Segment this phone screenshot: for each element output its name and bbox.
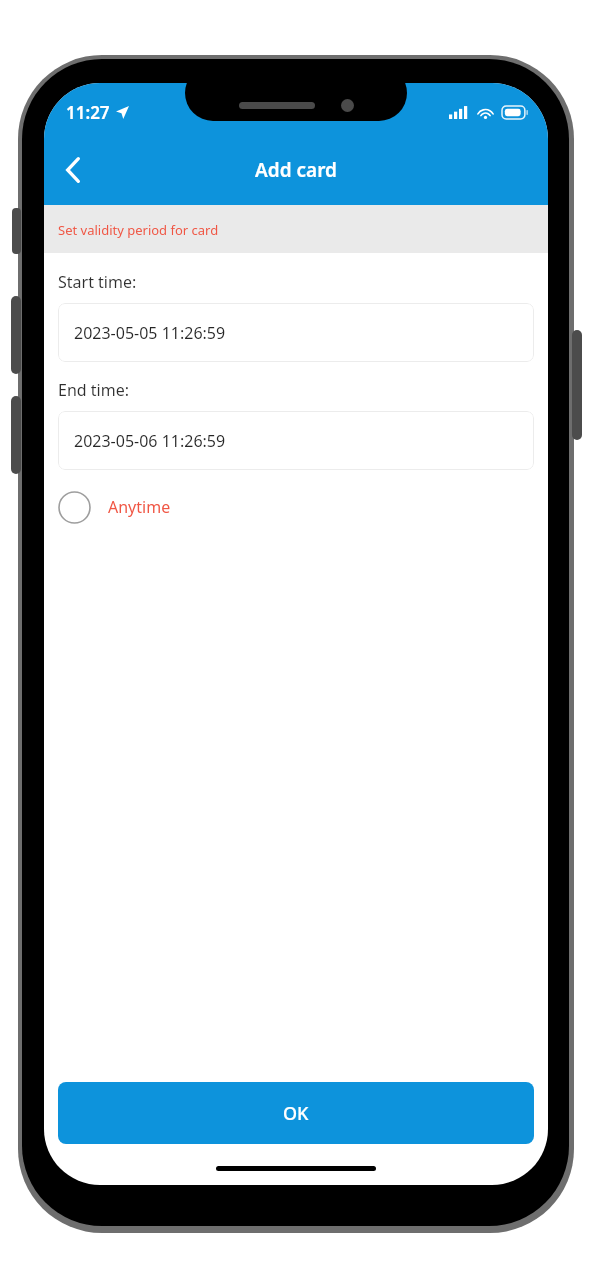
staticText: 11:27 [66, 101, 110, 124]
button[interactable]: Anytime [58, 484, 171, 530]
staticText: Anytime [108, 496, 171, 518]
staticText: Start time: [58, 271, 137, 293]
staticText: 2023-05-06 11:26:59 [74, 430, 226, 452]
button[interactable]: 2023-05-05 11:26:59 [58, 303, 534, 362]
staticText: End time: [58, 379, 129, 401]
button[interactable]: 2023-05-06 11:26:59 [58, 411, 534, 470]
staticText: OK [283, 1101, 309, 1126]
button[interactable]: Back [44, 142, 100, 198]
staticText: Set validity period for card [58, 221, 219, 239]
button[interactable]: OK [58, 1082, 534, 1144]
staticText: 2023-05-05 11:26:59 [74, 322, 226, 344]
staticText: Add card [255, 157, 337, 183]
